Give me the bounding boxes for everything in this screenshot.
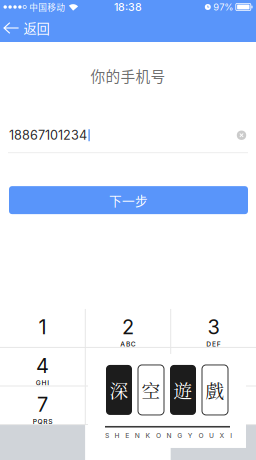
staticText: 2 [122, 315, 134, 339]
button[interactable]: Zero [85, 425, 171, 460]
staticText: 返回 [23, 18, 49, 38]
button[interactable]: 2 [86, 309, 170, 347]
staticText: DEF [206, 340, 221, 348]
staticText: S H E N K O N G Y O U X I [105, 431, 232, 440]
staticText: 7 [37, 392, 48, 417]
button[interactable]: 4 [0, 348, 85, 386]
staticText: 深 [109, 376, 128, 403]
button[interactable]: 1 [0, 309, 85, 347]
button[interactable]: 8 [86, 386, 170, 424]
staticText: 中国移动 [29, 1, 65, 13]
staticText: 6 [208, 354, 220, 378]
button[interactable]: 下一步 [9, 186, 248, 214]
staticText: 遊 [173, 376, 192, 403]
staticText: 8 [122, 392, 134, 417]
staticText: 1 [38, 315, 46, 339]
button[interactable]: 5 [86, 348, 170, 386]
button[interactable]: 9 [171, 386, 256, 424]
staticText: ABC [120, 340, 136, 348]
staticText: 18:38 [114, 0, 142, 13]
staticText: 空 [141, 376, 160, 403]
staticText: 18867101234 [9, 128, 87, 143]
staticText: MNO [205, 379, 222, 387]
staticText: 下一步 [109, 191, 148, 209]
staticText: 3 [208, 315, 220, 339]
button[interactable]: 返回 [0, 14, 57, 42]
staticText: 你的手机号 [90, 65, 165, 86]
staticText: JKL [121, 379, 135, 387]
staticText: 戲 [205, 376, 224, 403]
staticText: 9 [208, 392, 220, 417]
staticText: WXYZ [202, 417, 225, 426]
staticText: 97% [213, 1, 233, 13]
staticText: GHI [36, 379, 49, 387]
staticText: PQRS [33, 417, 52, 426]
button[interactable]: Delete [171, 425, 256, 460]
button[interactable]: 3 [171, 309, 256, 347]
staticText: TUV [120, 417, 136, 426]
button[interactable]: 6 [171, 348, 256, 386]
staticText: 4 [36, 354, 49, 378]
button[interactable]: 7 [0, 386, 85, 424]
staticText: 5 [122, 354, 134, 378]
